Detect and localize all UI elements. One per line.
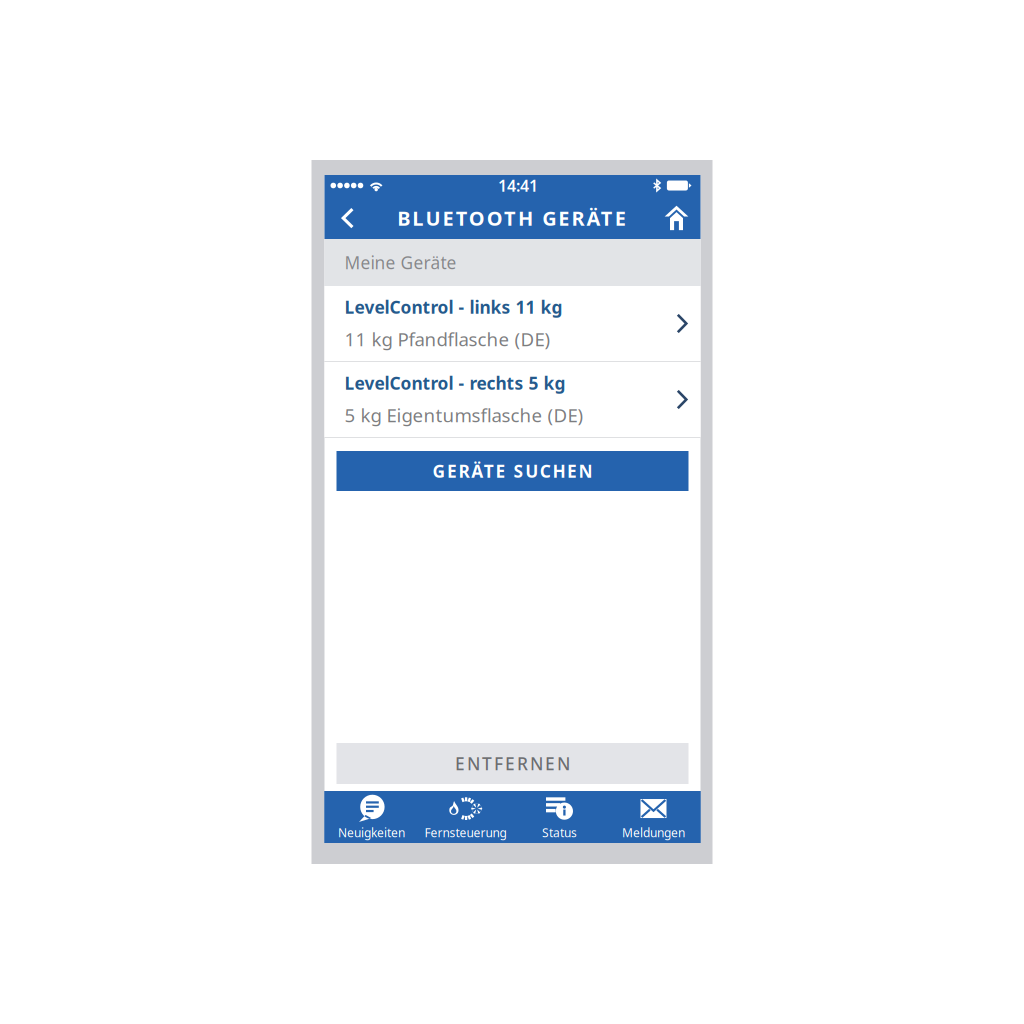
staticText: Neuigkeiten <box>338 824 405 840</box>
staticText: Status <box>542 824 577 840</box>
staticText: LevelControl - links 11 kg <box>344 296 562 319</box>
staticText: 5 kg Eigentumsflasche (DE) <box>344 403 583 427</box>
button[interactable]: Back <box>328 196 366 239</box>
button[interactable]: Fernsteuerung <box>418 791 512 843</box>
button[interactable]: Home <box>656 196 696 239</box>
button[interactable]: Neuigkeiten <box>324 791 418 843</box>
staticText: Meldungen <box>622 824 685 840</box>
staticText: Meine Geräte <box>344 251 456 274</box>
staticText: ENTFERNEN <box>455 752 570 775</box>
staticText: 11 kg Pfandflasche (DE) <box>344 327 550 351</box>
button[interactable]: LevelControl - links 11 kg <box>324 286 700 361</box>
staticText: LevelControl - rechts 5 kg <box>344 372 565 395</box>
staticText: BLUETOOTH GERÄTE <box>397 205 626 231</box>
button[interactable]: ENTFERNEN <box>336 743 688 784</box>
staticText: GERÄTE SUCHEN <box>432 459 593 482</box>
staticText: 14:41 <box>498 175 538 196</box>
button[interactable]: Meldungen <box>606 791 700 843</box>
button[interactable]: Status <box>512 791 606 843</box>
button[interactable]: LevelControl - rechts 5 kg <box>324 362 700 437</box>
staticText: Fernsteuerung <box>424 824 506 840</box>
button[interactable]: GERÄTE SUCHEN <box>336 451 688 491</box>
